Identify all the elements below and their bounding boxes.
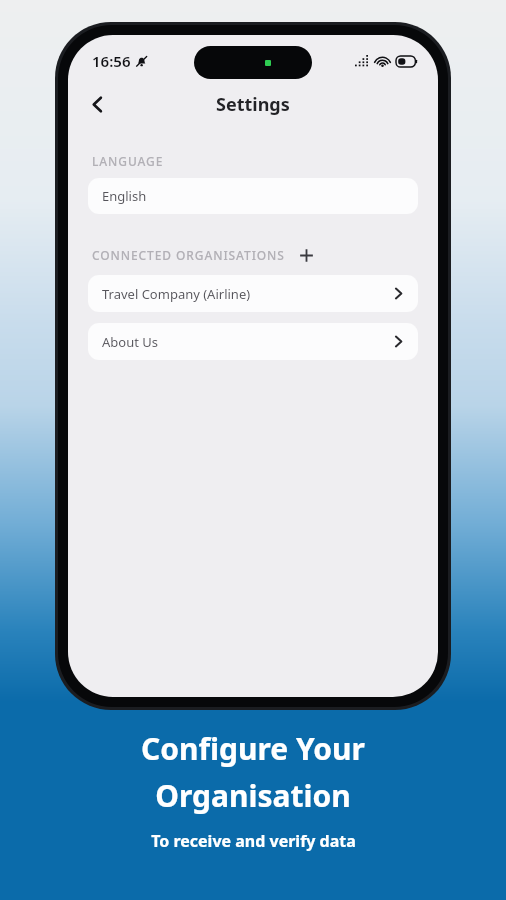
staticText: Configure Your (141, 728, 365, 769)
staticText: Organisation (155, 775, 351, 816)
staticText: Settings (216, 92, 290, 117)
staticText: LANGUAGE (92, 153, 164, 169)
button[interactable]: Back (76, 83, 118, 125)
staticText: About Us (102, 333, 159, 351)
button[interactable]: Travel Company (Airline) (88, 275, 418, 312)
staticText: To receive and verify data (151, 830, 356, 852)
staticText: Travel Company (Airline) (102, 285, 251, 303)
button[interactable]: About Us (88, 323, 418, 360)
staticText: 16:56 (92, 51, 131, 71)
button[interactable]: Add organisation (295, 244, 317, 266)
button[interactable]: English (88, 178, 418, 214)
staticText: English (102, 187, 147, 205)
staticText: CONNECTED ORGANISATIONS (92, 247, 285, 263)
